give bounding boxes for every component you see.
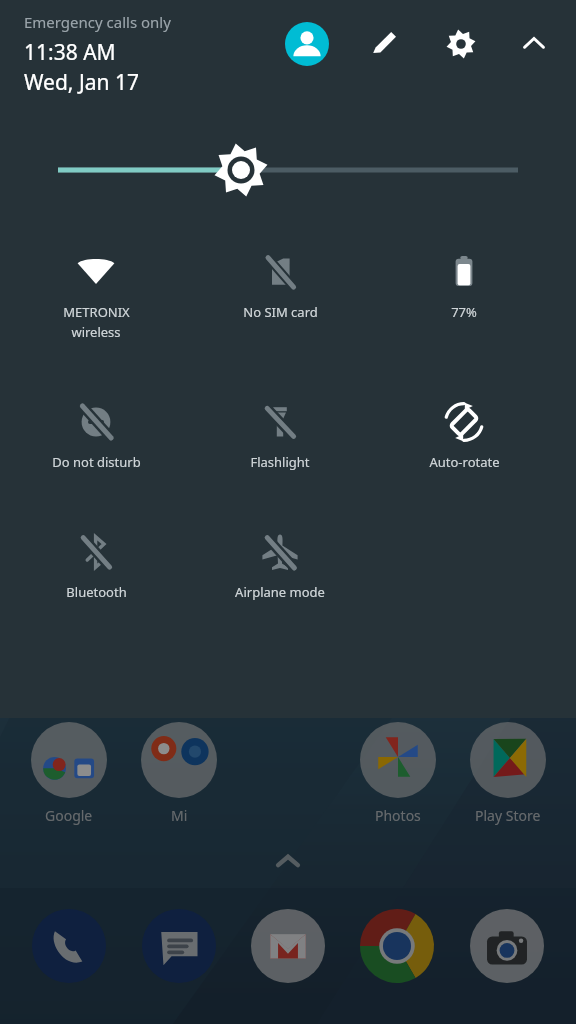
- button[interactable]: Mi: [128, 722, 230, 825]
- button[interactable]: Chrome: [357, 906, 437, 986]
- button[interactable]: Edit tiles: [358, 18, 410, 70]
- button[interactable]: Airplane mode: [188, 521, 372, 601]
- button[interactable]: Settings: [435, 18, 487, 70]
- button[interactable]: Photos: [347, 722, 449, 825]
- staticText: Do not disturb: [52, 453, 141, 471]
- staticText: Google: [45, 806, 93, 825]
- staticText: Auto-rotate: [429, 453, 500, 471]
- button[interactable]: METRONIX: [4, 241, 188, 341]
- staticText: Photos: [375, 806, 421, 825]
- staticText: METRONIX: [63, 303, 130, 321]
- button[interactable]: Bluetooth: [4, 521, 188, 601]
- button[interactable]: Do not disturb: [4, 391, 188, 471]
- button[interactable]: User profile: [281, 18, 333, 70]
- button[interactable]: Messages: [139, 906, 219, 986]
- button[interactable]: Gmail: [248, 906, 328, 986]
- button[interactable]: Phone: [29, 906, 109, 986]
- button[interactable]: Auto-rotate: [372, 391, 556, 471]
- staticText: Bluetooth: [66, 583, 127, 601]
- staticText: Flashlight: [250, 453, 310, 471]
- staticText: wireless: [71, 323, 121, 341]
- staticText: Wed, Jan 17: [24, 68, 139, 97]
- button[interactable]: Brightness: [0, 143, 576, 197]
- button[interactable]: Open app drawer: [268, 842, 308, 882]
- button[interactable]: Collapse: [510, 20, 558, 68]
- staticText: 11:38 AM: [24, 38, 116, 67]
- staticText: Emergency calls only: [24, 12, 171, 32]
- button[interactable]: Google: [18, 722, 120, 825]
- button[interactable]: Play Store: [457, 722, 559, 825]
- button[interactable]: Flashlight: [188, 391, 372, 471]
- button[interactable]: 77%: [372, 241, 556, 321]
- staticText: Play Store: [475, 806, 541, 825]
- button[interactable]: Camera: [467, 906, 547, 986]
- staticText: No SIM card: [243, 303, 318, 321]
- staticText: 77%: [451, 303, 477, 321]
- staticText: Mi: [171, 806, 188, 825]
- staticText: Airplane mode: [235, 583, 325, 601]
- button[interactable]: No SIM card: [188, 241, 372, 321]
